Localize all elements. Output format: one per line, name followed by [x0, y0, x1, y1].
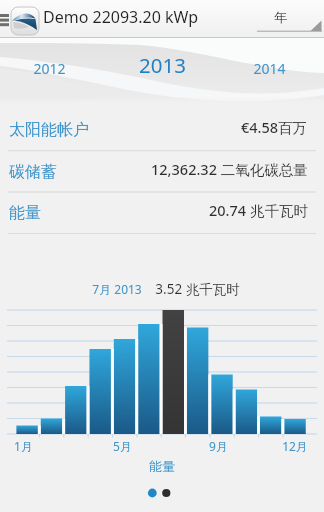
staticText: 12月 [282, 438, 308, 454]
button[interactable]: 年 [250, 5, 310, 29]
button[interactable]: 2012 [9, 56, 89, 80]
staticText: 年 [274, 9, 287, 25]
staticText: 3.52 兆千瓦时 [155, 280, 240, 298]
button[interactable]: 2013 [117, 50, 207, 80]
staticText: 2012 [33, 59, 66, 78]
button[interactable]: Demo 22093.20 kWp [43, 4, 243, 30]
button[interactable] [0, 300, 324, 440]
staticText: €4.58百万 [241, 117, 308, 137]
staticText: 能量 [9, 203, 41, 223]
staticText: Demo 22093.20 kWp [43, 6, 199, 28]
staticText: 太阳能帐户 [9, 120, 89, 140]
staticText: 5月 [113, 438, 132, 454]
button[interactable]: 能量 [122, 454, 202, 478]
staticText: 9月 [209, 438, 228, 454]
staticText: 2013 [139, 51, 186, 79]
staticText: 2014 [253, 59, 286, 78]
staticText: 能量 [149, 458, 175, 474]
button[interactable]: 能量 [0, 192, 324, 234]
button[interactable]: 碳储蓄 [0, 151, 324, 192]
staticText: 12,362.32 二氧化碳总量 [151, 159, 308, 179]
staticText: 7月 2013 [92, 281, 142, 297]
button[interactable]: 太阳能帐户 [0, 108, 324, 151]
button[interactable]: 2014 [229, 56, 309, 80]
staticText: 1月 [14, 438, 33, 454]
staticText: 碳储蓄 [9, 162, 57, 182]
staticText: 20.74 兆千瓦时 [209, 200, 308, 220]
